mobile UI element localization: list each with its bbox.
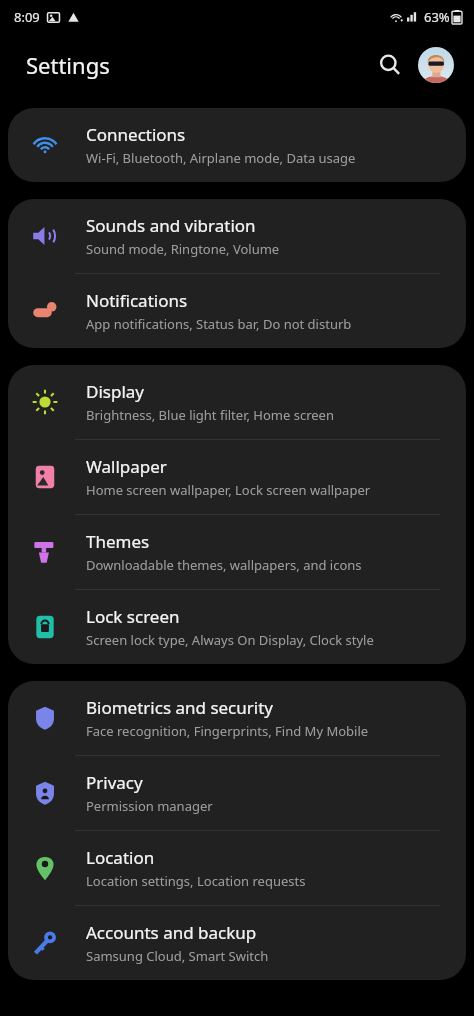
staticText: Samsung Cloud, Smart Switch [86,947,269,965]
staticText: Display [86,380,144,403]
staticText: Face recognition, Fingerprints, Find My … [86,722,369,740]
staticText: 63% [424,8,450,26]
staticText: App notifications, Status bar, Do not di… [86,315,352,333]
button[interactable]: Privacy [8,756,466,830]
button[interactable]: Search [368,43,412,87]
staticText: Wi-Fi, Bluetooth, Airplane mode, Data us… [86,149,356,167]
button[interactable]: Themes [8,515,466,589]
button[interactable]: Display [8,365,466,439]
button[interactable]: Notifications [8,274,466,348]
button[interactable]: Wallpaper [8,440,466,514]
button[interactable]: Connections [8,108,466,182]
staticText: Home screen wallpaper, Lock screen wallp… [86,481,371,499]
button[interactable]: Lock screen [8,590,466,664]
staticText: Privacy [86,771,143,794]
staticText: Sounds and vibration [86,214,256,237]
staticText: Location settings, Location requests [86,872,306,890]
button[interactable]: Accounts and backup [8,906,466,980]
button[interactable]: Biometrics and security [8,681,466,755]
staticText: Brightness, Blue light filter, Home scre… [86,406,334,424]
staticText: Connections [86,123,186,146]
button[interactable]: Sounds and vibration [8,199,466,273]
staticText: Location [86,846,155,869]
button[interactable]: Location [8,831,466,905]
staticText: Permission manager [86,797,213,815]
staticText: Downloadable themes, wallpapers, and ico… [86,556,362,574]
staticText: Wallpaper [86,455,167,478]
staticText: Accounts and backup [86,921,257,944]
staticText: 8:09 [14,8,40,26]
staticText: Notifications [86,289,188,312]
staticText: Settings [26,50,110,80]
staticText: Biometrics and security [86,696,273,719]
staticText: Themes [86,530,150,553]
button[interactable]: Account [416,45,456,85]
staticText: Screen lock type, Always On Display, Clo… [86,631,374,649]
staticText: Lock screen [86,605,180,628]
staticText: Sound mode, Ringtone, Volume [86,240,280,258]
